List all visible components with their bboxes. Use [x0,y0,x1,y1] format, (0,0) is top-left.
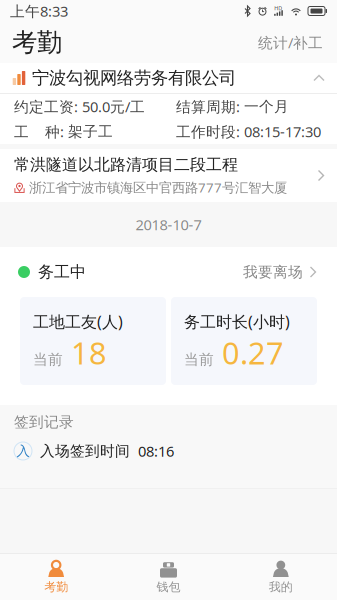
button[interactable]: 常洪隧道以北路清项目二段工程 [0,149,337,202]
staticText: 钱包 [156,580,180,594]
staticText: 08:15-17:30 [240,122,321,141]
staticText: 浙江省宁波市镇海区中官西路777号汇智大厦 [29,178,287,196]
staticText: 统计/补工 [258,33,323,52]
staticText: 结算周期: [176,97,240,116]
button[interactable]: 我要离场 [243,257,317,287]
staticText: 务工中 [38,262,86,282]
staticText: 考勤 [12,27,62,58]
staticText: 入 [16,443,29,459]
staticText: 50.0元/工 [78,97,145,116]
staticText: 我的 [269,580,293,594]
staticText: 当前 [33,351,63,369]
staticText: 宁波勾视网络劳务有限公司 [32,67,236,89]
staticText: 0.27 [222,332,284,373]
staticText: 工地工友(人) [33,311,123,332]
staticText: 上午8:33 [10,1,68,21]
staticText: 架子工 [64,122,113,140]
button[interactable]: 钱包 [112,554,225,600]
staticText: 18 [71,332,107,373]
staticText: 常洪隧道以北路清项目二段工程 [14,155,238,174]
staticText: 当前 [184,351,214,369]
button[interactable]: 我的 [225,554,337,600]
staticText: 一个月 [240,97,289,115]
staticText: 我要离场 [243,263,303,281]
staticText: 务工时长(小时) [184,311,290,332]
staticText: 约定工资: [14,97,78,116]
staticText: 2018-10-7 [135,215,201,234]
staticText: 工 种: [14,122,64,141]
button[interactable]: 统计/补工 [256,27,325,58]
staticText: HD [274,5,282,12]
staticText: 考勤 [44,580,68,594]
button[interactable]: 宁波勾视网络劳务有限公司 [0,63,337,93]
staticText: 工作时段: [176,122,240,141]
staticText: 08:16 [138,441,174,461]
staticText: 入场签到时间 [40,442,130,460]
button[interactable]: 考勤 [0,554,112,600]
staticText: 签到记录 [14,413,74,431]
